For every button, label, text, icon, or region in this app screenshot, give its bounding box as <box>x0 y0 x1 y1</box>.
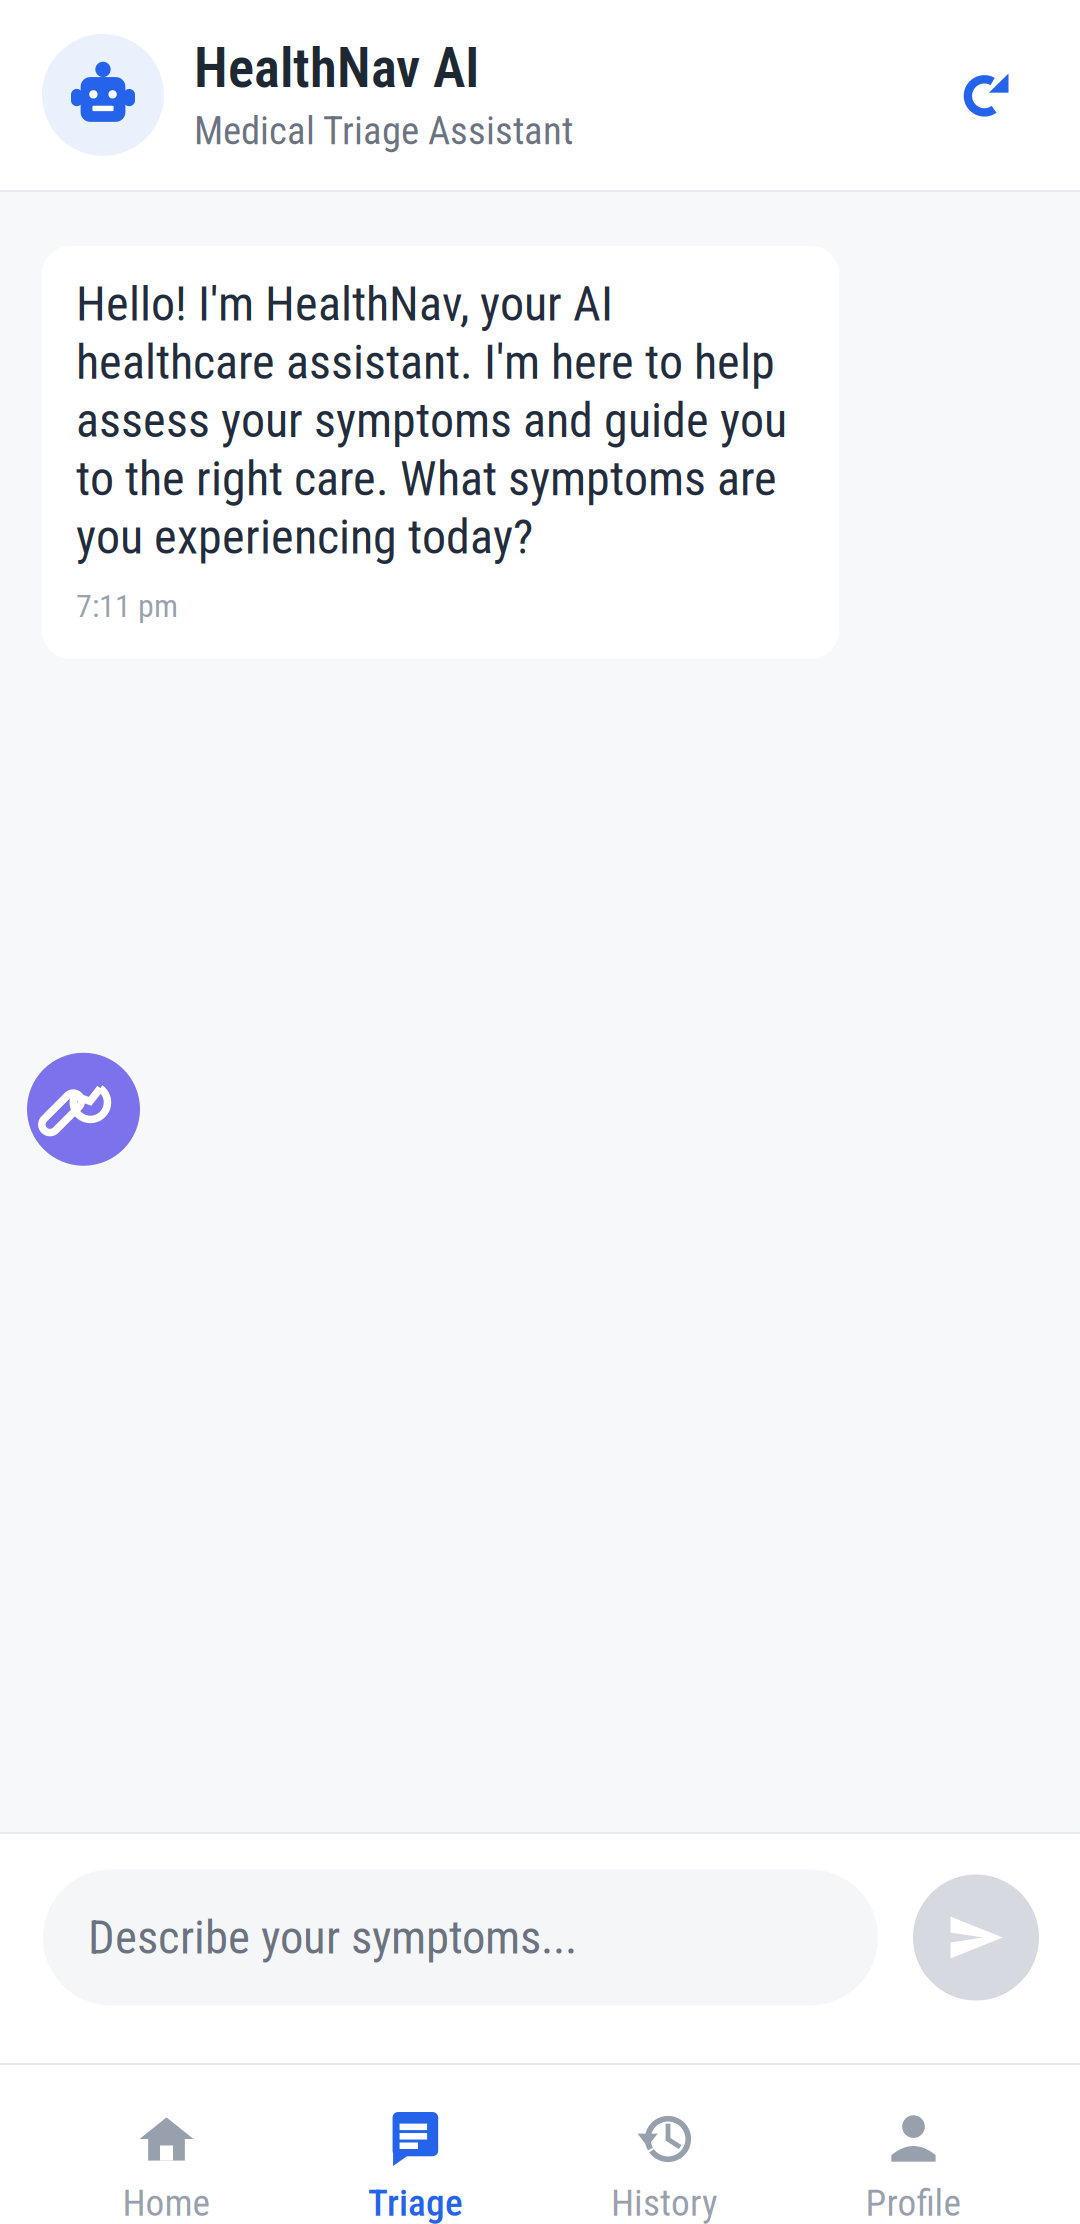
button[interactable]: Send <box>913 1874 1039 2000</box>
staticText: Triage <box>368 2181 463 2224</box>
button[interactable]: Triage <box>291 2065 540 2224</box>
staticText: Medical Triage Assistant <box>194 108 573 154</box>
staticText: 7:11 pm <box>76 587 178 625</box>
staticText: History <box>611 2181 718 2224</box>
button[interactable]: Describe your symptoms... <box>43 1869 878 2005</box>
staticText: HealthNav AI <box>194 36 480 100</box>
staticText: Home <box>122 2181 210 2224</box>
button[interactable]: Home <box>42 2065 291 2224</box>
staticText: Describe your symptoms... <box>88 1910 577 1965</box>
button[interactable]: Restart conversation <box>937 45 1037 145</box>
staticText: Profile <box>865 2181 961 2224</box>
button[interactable]: Profile <box>789 2065 1038 2224</box>
button[interactable]: History <box>540 2065 789 2224</box>
staticText: Hello! I'm HealthNav, your AI healthcare… <box>76 276 787 565</box>
